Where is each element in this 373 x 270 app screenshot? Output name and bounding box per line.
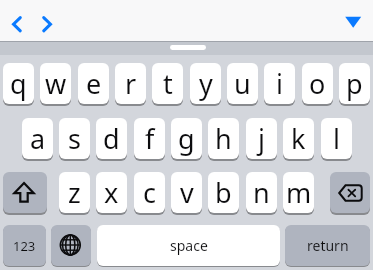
button[interactable]	[330, 172, 370, 213]
button[interactable]: e	[78, 63, 109, 104]
staticText: w	[45, 65, 67, 102]
staticText: a	[30, 120, 46, 157]
staticText: g	[178, 120, 195, 157]
button[interactable]: u	[227, 63, 258, 104]
button[interactable]: space	[97, 225, 280, 266]
staticText: q	[10, 65, 27, 102]
button[interactable]: y	[190, 63, 221, 104]
button[interactable]: k	[283, 118, 314, 159]
staticText: z	[68, 174, 81, 211]
button[interactable]: w	[40, 63, 71, 104]
button[interactable]: r	[115, 63, 146, 104]
staticText: u	[234, 65, 251, 102]
button[interactable]	[51, 225, 91, 266]
staticText: o	[309, 65, 326, 102]
staticText: d	[103, 120, 120, 157]
button[interactable]: x	[96, 172, 127, 213]
staticText: c	[143, 174, 156, 211]
button[interactable]: h	[208, 118, 239, 159]
button[interactable]	[3, 172, 47, 213]
staticText: space	[170, 236, 208, 255]
button[interactable]: 123	[3, 225, 46, 266]
staticText: 123	[13, 237, 36, 255]
button[interactable]: v	[171, 172, 202, 213]
button[interactable]: n	[246, 172, 277, 213]
staticText: v	[180, 174, 194, 211]
button[interactable]: return	[285, 225, 370, 266]
staticText: b	[215, 174, 232, 211]
button[interactable]: o	[302, 63, 333, 104]
button[interactable]: t	[152, 63, 183, 104]
staticText: f	[145, 120, 155, 157]
staticText: i	[276, 65, 283, 102]
button[interactable]: z	[59, 172, 90, 213]
button[interactable]: l	[321, 118, 352, 159]
button[interactable]: s	[59, 118, 90, 159]
staticText: s	[68, 120, 81, 157]
staticText: n	[253, 174, 270, 211]
button[interactable]: d	[96, 118, 127, 159]
button[interactable]: f	[134, 118, 165, 159]
staticText: x	[104, 174, 119, 211]
button[interactable]: a	[22, 118, 53, 159]
staticText: y	[199, 65, 213, 102]
staticText: p	[346, 65, 363, 102]
staticText: l	[333, 120, 340, 157]
button[interactable]: m	[283, 172, 314, 213]
staticText: k	[291, 120, 306, 157]
staticText: e	[86, 65, 102, 102]
staticText: h	[215, 120, 232, 157]
button[interactable]: b	[208, 172, 239, 213]
button[interactable]: i	[264, 63, 295, 104]
button[interactable]: q	[3, 63, 34, 104]
staticText: return	[307, 236, 349, 255]
button[interactable]: j	[246, 118, 277, 159]
staticText: t	[163, 65, 173, 102]
button[interactable]: p	[339, 63, 370, 104]
button[interactable]: g	[171, 118, 202, 159]
staticText: j	[258, 120, 265, 157]
button[interactable]: c	[134, 172, 165, 213]
staticText: m	[286, 174, 312, 211]
staticText: r	[125, 65, 137, 102]
